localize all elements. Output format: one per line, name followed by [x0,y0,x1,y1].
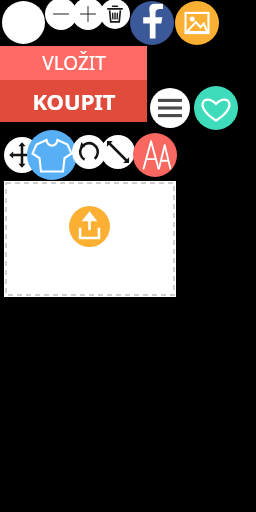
button[interactable]: Upload design [4,181,176,297]
button[interactable]: KOUPIT [0,80,147,122]
button[interactable]: Zoom in [72,0,104,30]
button[interactable]: VLOŽIT [0,46,147,80]
button[interactable]: Share on Facebook [130,1,174,45]
button[interactable]: Move [4,137,40,173]
button[interactable]: Upload [69,206,110,247]
button[interactable]: T-shirt [27,130,77,180]
button[interactable]: Rotate [72,135,106,169]
button[interactable]: Delete [100,0,130,29]
button[interactable]: Color [2,1,45,44]
button[interactable]: Add photo [175,1,219,45]
button[interactable]: Text [133,133,177,177]
staticText: KOUPIT [32,86,116,116]
button[interactable]: Zoom out [45,0,77,30]
staticText: VLOŽIT [42,50,106,76]
button[interactable]: Favourite [194,86,238,130]
button[interactable]: Menu [150,88,190,128]
button[interactable]: Resize [101,135,135,169]
